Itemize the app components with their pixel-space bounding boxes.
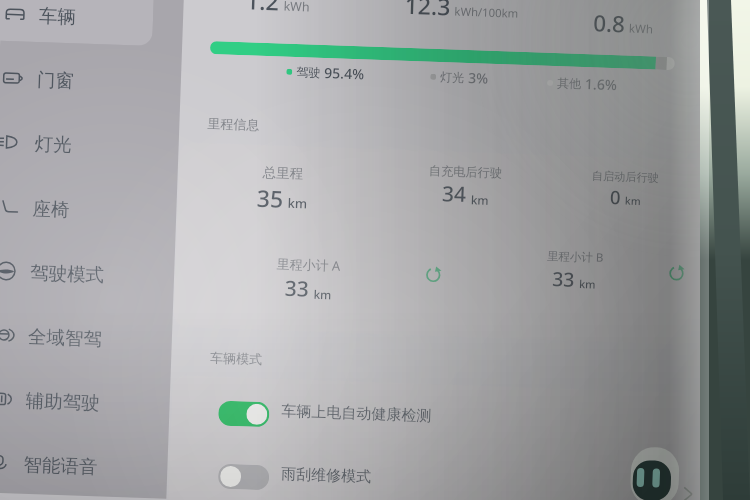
staticText: 里程信息: [207, 115, 260, 133]
staticText: km: [287, 194, 308, 212]
other: Expand assistant: [680, 486, 697, 500]
staticText: km: [579, 276, 596, 292]
button[interactable]: 车辆上电自动健康检测: [218, 393, 639, 438]
staticText: 3%: [468, 68, 489, 88]
staticText: 车辆上电自动健康检测: [281, 402, 432, 426]
button[interactable]: 驾驶模式: [0, 249, 175, 298]
staticText: km: [471, 191, 489, 208]
button[interactable]: 全域智驾: [0, 313, 173, 362]
button[interactable]: 门窗: [0, 57, 182, 105]
staticText: 驾驶模式: [30, 261, 104, 286]
staticText: 1.6%: [585, 74, 617, 94]
button[interactable]: 车辆: [0, 0, 184, 41]
staticText: 灯光: [440, 69, 464, 85]
staticText: 灯光: [34, 132, 72, 156]
staticText: kWh: [629, 21, 653, 37]
staticText: 其他: [557, 75, 581, 91]
staticText: 辅助驾驶: [25, 389, 100, 414]
staticText: 33: [284, 274, 310, 304]
staticText: kWh: [283, 0, 311, 15]
staticText: 35: [256, 182, 284, 214]
staticText: 车辆: [39, 4, 76, 28]
staticText: 总里程: [262, 164, 304, 182]
staticText: km: [625, 194, 641, 208]
staticText: 95.4%: [324, 63, 365, 83]
staticText: 34: [442, 179, 468, 209]
button[interactable]: 雨刮维修模式: [218, 457, 639, 500]
button[interactable]: 智能语音: [0, 441, 168, 490]
staticText: 驾驶: [296, 64, 320, 80]
staticText: 全域智驾: [27, 325, 102, 350]
staticText: 33: [552, 265, 576, 293]
staticText: 自充电后行驶: [429, 163, 503, 180]
staticText: 自启动后行驶: [592, 168, 660, 185]
button[interactable]: 辅助驾驶: [0, 377, 170, 426]
button[interactable]: 灯光: [0, 121, 179, 169]
button[interactable]: Reset trip meter: [662, 259, 691, 288]
staticText: 智能语音: [23, 453, 98, 478]
staticText: 雨刮维修模式: [281, 465, 371, 487]
button[interactable]: Reset trip meter: [419, 260, 448, 289]
staticText: 里程小计 B: [547, 248, 604, 266]
button[interactable]: Voice assistant: [626, 443, 685, 500]
staticText: 里程小计 A: [276, 254, 341, 275]
staticText: 门窗: [36, 68, 74, 92]
staticText: km: [313, 286, 332, 302]
staticText: kWh/100km: [454, 3, 519, 21]
staticText: 座椅: [32, 197, 70, 221]
staticText: 12.3: [404, 0, 451, 21]
staticText: 0: [610, 184, 622, 209]
staticText: 1.2: [245, 0, 280, 17]
button[interactable]: 座椅: [0, 186, 177, 234]
staticText: 0.8: [593, 7, 626, 39]
staticText: 车辆模式: [210, 349, 262, 367]
